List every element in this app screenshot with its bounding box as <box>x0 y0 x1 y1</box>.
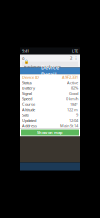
staticText: 0 km/h <box>66 96 78 101</box>
staticText: Status <box>22 80 32 85</box>
staticText: Sats <box>22 112 29 118</box>
staticText: A9F2-331 <box>62 74 78 80</box>
staticText: LTE <box>72 48 78 54</box>
staticText: Show on map <box>37 130 63 135</box>
staticText: 🔒 tracker.example.com <box>24 59 61 69</box>
staticText: Course <box>22 101 35 107</box>
staticText: 82% <box>71 85 78 91</box>
staticText: 184° <box>70 101 78 107</box>
staticText: Good <box>69 91 78 96</box>
button[interactable]: Show on map <box>21 129 79 135</box>
staticText: Active <box>67 80 78 85</box>
staticText: ⋮ <box>74 56 78 60</box>
staticText: ⌂ <box>22 56 25 60</box>
staticText: 2 <box>70 55 72 61</box>
staticText: 9:41 <box>22 48 29 54</box>
staticText: Speed <box>22 96 32 101</box>
staticText: 9 <box>76 112 78 118</box>
staticText: Altitude <box>22 107 35 112</box>
staticText: Battery <box>22 85 35 91</box>
staticText: Device Detail <box>41 64 59 78</box>
staticText: Address <box>22 123 37 128</box>
staticText: 122 m <box>67 107 78 112</box>
staticText: Updated <box>22 118 36 123</box>
staticText: Signal <box>22 91 32 96</box>
staticText: 12:04 <box>69 118 78 123</box>
staticText: Main St 14 <box>60 123 78 128</box>
staticText: Device ID <box>22 74 39 80</box>
